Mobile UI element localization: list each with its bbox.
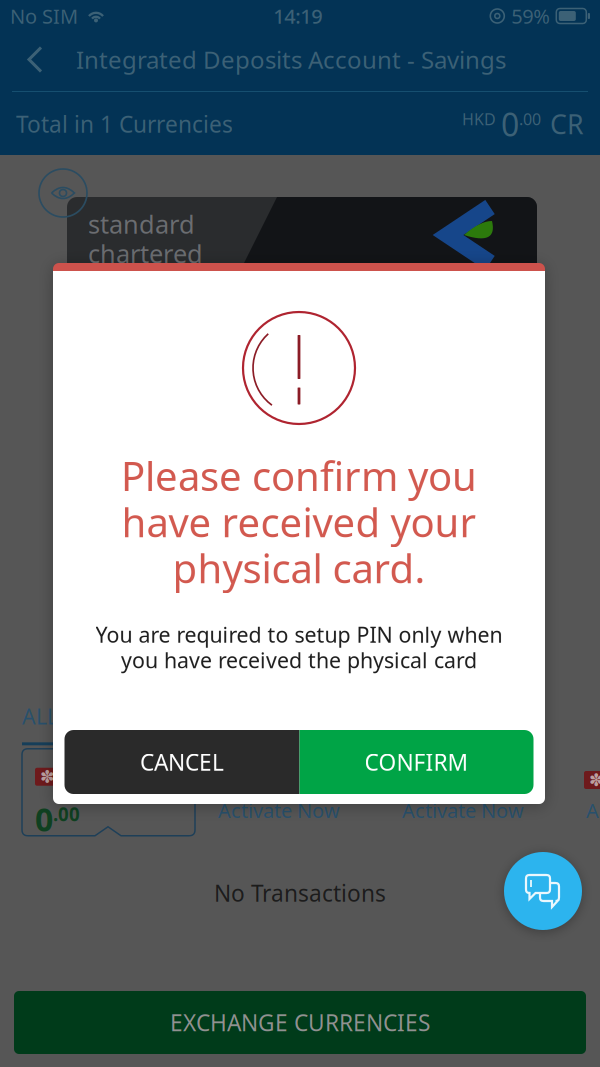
button[interactable]: Activate Now <box>402 797 524 824</box>
button[interactable]: Activate Now <box>586 797 600 824</box>
staticText: Please confirm you <box>121 449 477 502</box>
button[interactable]: Back <box>8 32 62 86</box>
button[interactable]: CANCEL <box>64 730 299 794</box>
staticText: Activate Now <box>218 797 340 824</box>
staticText: 0 <box>501 103 519 145</box>
staticText: 14:19 <box>273 3 322 29</box>
button[interactable]: Activate Now <box>218 797 340 824</box>
staticText: priority private <box>88 266 247 296</box>
staticText: No Transactions <box>214 878 386 908</box>
staticText: standard <box>88 207 195 241</box>
staticText: ✽ <box>589 770 600 790</box>
button[interactable]: ALL <box>22 702 74 745</box>
staticText: CR <box>550 106 584 142</box>
staticText: Total in 1 Currencies <box>16 109 233 139</box>
button[interactable]: Show balance <box>38 168 88 218</box>
staticText: You are required to setup PIN only when <box>95 620 502 649</box>
staticText: CANCEL <box>140 747 224 777</box>
staticText: Activate Now <box>586 797 600 824</box>
staticText: EXCHANGE CURRENCIES <box>170 1007 430 1037</box>
button[interactable]: Chat with us <box>504 852 582 930</box>
staticText: HKD <box>462 108 496 130</box>
staticText: CONFIRM <box>364 747 468 777</box>
button[interactable]: EXCHANGE CURRENCIES <box>14 991 586 1054</box>
staticText: Activate Now <box>402 797 524 824</box>
staticText: ✽ <box>40 767 55 787</box>
staticText: physical card. <box>172 541 425 594</box>
staticText: Integrated Deposits Account - Savings <box>76 44 506 75</box>
staticText: .00 <box>519 108 541 130</box>
staticText: 0 <box>35 798 53 840</box>
staticText: 59% <box>511 3 550 29</box>
staticText: have received your <box>121 495 476 548</box>
staticText: ALL <box>22 702 58 730</box>
staticText: No SIM <box>10 3 78 29</box>
staticText: you have received the physical card <box>121 646 477 674</box>
button[interactable]: CONFIRM <box>299 730 533 794</box>
staticText: .00 <box>53 802 80 826</box>
staticText: chartered <box>88 237 203 270</box>
